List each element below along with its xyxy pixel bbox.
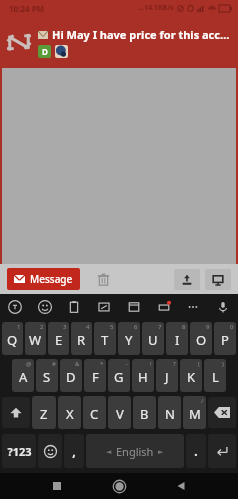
button[interactable]: Translate <box>8 300 22 314</box>
button[interactable]: Voice input <box>216 300 230 314</box>
button[interactable]: 5 <box>94 322 116 355</box>
staticText: 9 <box>206 323 210 331</box>
button[interactable]: & <box>60 359 82 392</box>
staticText: 1 <box>17 323 21 331</box>
staticText: C <box>90 405 99 423</box>
button[interactable]: Recents <box>40 473 74 499</box>
button[interactable]: Settings <box>157 300 171 314</box>
staticText: 5 <box>110 323 114 331</box>
button[interactable]: B <box>133 396 156 429</box>
staticText: . <box>194 443 198 459</box>
button[interactable]: Calendar <box>127 300 141 314</box>
staticText: E <box>55 331 63 349</box>
button[interactable]: ? <box>156 359 178 392</box>
button[interactable]: Document <box>38 45 51 58</box>
button[interactable]: X <box>58 396 81 429</box>
button[interactable]: Shift <box>2 397 30 428</box>
button[interactable]: C <box>83 396 106 429</box>
staticText: I <box>175 331 180 349</box>
button[interactable]: ◄ <box>86 434 184 468</box>
button[interactable]: N <box>158 396 181 429</box>
staticText: K <box>187 368 196 386</box>
staticText: A <box>19 368 28 386</box>
staticText: ? <box>173 360 176 368</box>
button[interactable]: . <box>186 434 206 468</box>
staticText: * <box>100 360 104 368</box>
staticText: F <box>92 368 99 386</box>
staticText: 7 <box>158 323 162 331</box>
staticText: Z <box>40 405 48 423</box>
staticText: ...14.1KB/s <box>138 3 174 13</box>
staticText: English <box>116 444 154 459</box>
staticText: S <box>43 368 51 386</box>
button[interactable]: Attachment <box>55 45 68 58</box>
button[interactable]: V <box>108 396 131 429</box>
button[interactable]: 0 <box>214 322 236 355</box>
staticText: @ <box>26 360 32 368</box>
button[interactable]: * <box>84 359 106 392</box>
button[interactable]: Sticker <box>97 300 111 314</box>
button[interactable]: Enter <box>208 434 236 468</box>
button[interactable]: More options <box>186 300 200 314</box>
button[interactable]: 4 <box>71 322 92 355</box>
button[interactable]: - <box>108 359 130 392</box>
button[interactable]: / <box>183 396 206 429</box>
button[interactable]: # <box>36 359 58 392</box>
button[interactable]: Clipboard <box>67 300 81 314</box>
button[interactable]: 2 <box>25 322 46 355</box>
staticText: 0 <box>230 323 234 331</box>
staticText: H <box>138 368 148 386</box>
staticText: P <box>221 331 229 349</box>
staticText: 4 <box>86 323 90 331</box>
button[interactable]: 3 <box>48 322 69 355</box>
button[interactable]: Navision <box>4 27 34 57</box>
button[interactable]: Backspace <box>208 397 236 428</box>
button[interactable]: ( <box>180 359 202 392</box>
button[interactable]: Back <box>164 473 198 499</box>
staticText: 10:24 PM <box>9 3 45 14</box>
staticText: ◄ <box>106 448 112 456</box>
button[interactable]: 1 <box>2 322 23 355</box>
staticText: J <box>165 368 169 386</box>
button[interactable]: , <box>64 434 84 468</box>
staticText: V <box>116 405 124 423</box>
button[interactable]: ! <box>132 359 154 392</box>
button[interactable]: Emoji <box>38 434 62 468</box>
button[interactable]: ?123 <box>2 434 36 468</box>
staticText: 2 <box>40 323 44 331</box>
staticText: / <box>201 397 204 405</box>
staticText: L <box>212 368 219 386</box>
staticText: R <box>77 331 86 349</box>
staticText: U <box>148 331 158 349</box>
button[interactable]: 6 <box>118 322 140 355</box>
staticText: Y <box>125 331 133 349</box>
staticText: W <box>29 331 42 349</box>
button[interactable]: Home <box>102 473 136 499</box>
staticText: ?123 <box>7 444 32 459</box>
staticText: M <box>189 405 201 423</box>
staticText: G <box>114 368 124 386</box>
staticText: D <box>66 368 76 386</box>
button[interactable]: 8 <box>166 322 188 355</box>
staticText: ! <box>150 360 152 368</box>
staticText: Hi May I have price for this account… <box>52 27 232 42</box>
staticText: D <box>42 46 48 57</box>
button[interactable]: Z <box>32 396 56 429</box>
staticText: - <box>126 360 128 368</box>
button[interactable]: Delete <box>92 268 114 290</box>
staticText: X <box>66 405 74 423</box>
button[interactable]: Message <box>7 268 80 290</box>
staticText: Message <box>30 272 73 286</box>
button[interactable]: ) <box>204 359 226 392</box>
button[interactable]: Upload <box>174 269 200 290</box>
staticText: 3 <box>63 323 67 331</box>
button[interactable]: @ <box>12 359 34 392</box>
staticText: N <box>165 405 175 423</box>
staticText: ► <box>158 448 164 456</box>
staticText: , <box>72 443 76 459</box>
button[interactable]: Emoji <box>38 300 52 314</box>
staticText: 8 <box>182 323 186 331</box>
button[interactable]: 7 <box>142 322 164 355</box>
button[interactable]: Desktop view <box>205 269 231 290</box>
button[interactable]: 9 <box>190 322 212 355</box>
